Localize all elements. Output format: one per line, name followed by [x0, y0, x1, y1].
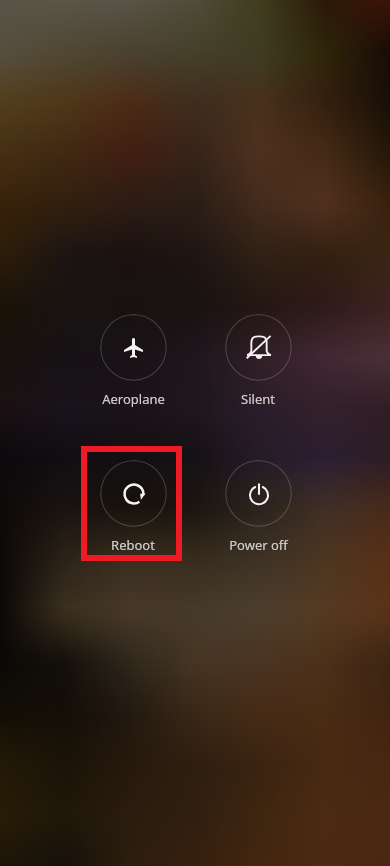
staticText: Aeroplane: [102, 390, 165, 408]
button[interactable]: Aeroplane: [78, 314, 188, 408]
button[interactable]: Power off: [203, 460, 313, 554]
staticText: Power off: [229, 536, 288, 554]
staticText: Reboot: [111, 536, 155, 554]
button[interactable]: Reboot: [78, 460, 188, 554]
staticText: Silent: [241, 390, 275, 408]
button[interactable]: Silent: [203, 314, 313, 408]
